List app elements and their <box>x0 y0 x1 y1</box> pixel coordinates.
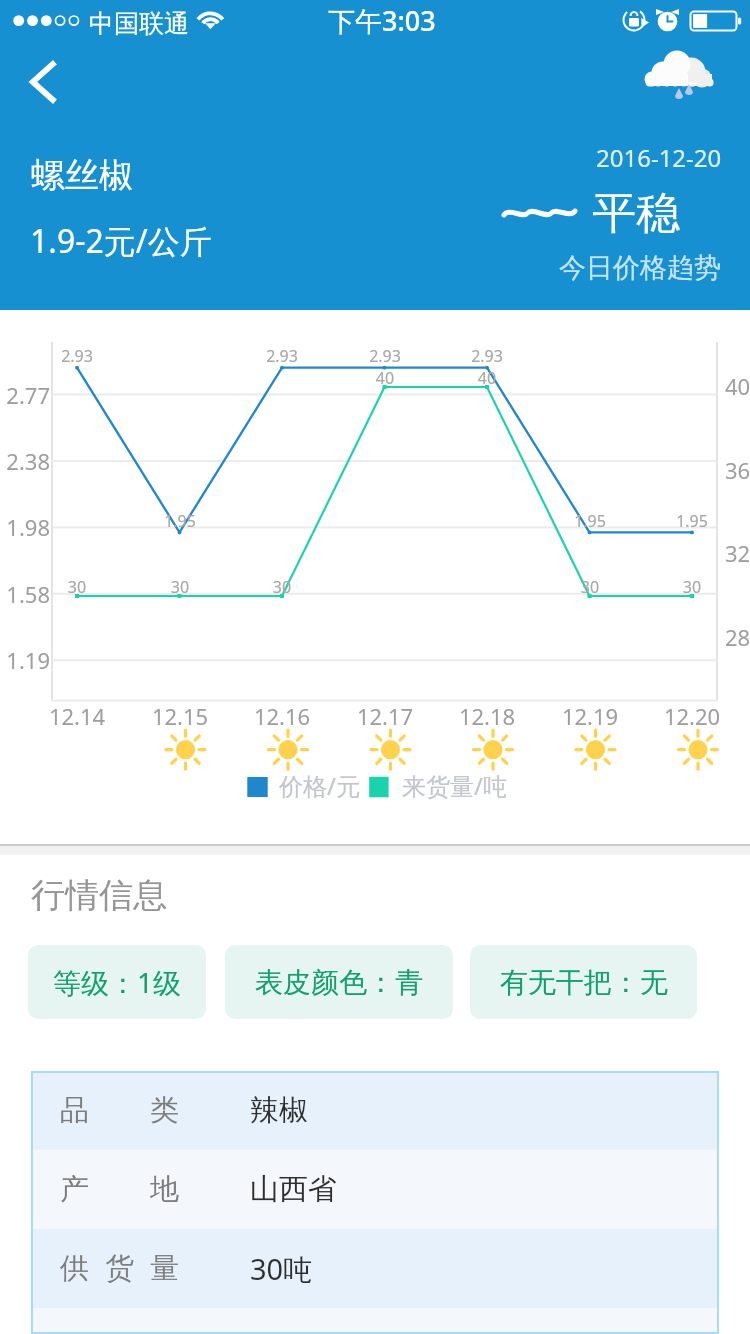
staticText: 1.19 <box>0 645 50 675</box>
staticText: 12.17 <box>345 701 425 731</box>
staticText: 下午3:03 <box>328 2 436 39</box>
staticText: 40 <box>725 371 750 401</box>
staticText: 行情信息 <box>31 874 167 917</box>
staticText: 地 <box>150 1171 179 1208</box>
staticText: 12.20 <box>652 701 732 731</box>
staticText: 36 <box>725 455 750 485</box>
staticText: 30 <box>550 576 630 598</box>
staticText: 30 <box>140 576 220 598</box>
staticText: 2.93 <box>37 345 117 367</box>
staticText: 2.93 <box>242 345 322 367</box>
staticText: 12.15 <box>140 701 220 731</box>
staticText: 12.16 <box>242 701 322 731</box>
other: Weather <box>640 45 730 107</box>
staticText: 品 <box>60 1092 89 1129</box>
staticText: 1.9-2元/公斤 <box>30 219 212 263</box>
staticText: 30 <box>242 576 322 598</box>
button[interactable]: 表皮颜色：青 <box>225 945 453 1019</box>
staticText: 来货量/吨 <box>402 769 507 802</box>
button[interactable]: Back <box>8 47 78 117</box>
staticText: 2.93 <box>345 345 425 367</box>
staticText: 有无干把：无 <box>500 965 668 1000</box>
button[interactable]: 品 <box>31 1071 719 1150</box>
button[interactable]: 有无干把：无 <box>470 945 697 1019</box>
button[interactable]: 供 <box>31 1229 719 1308</box>
staticText: 32 <box>725 538 750 568</box>
staticText: 今日价格趋势 <box>559 251 721 285</box>
staticText: 价格/元 <box>279 769 360 802</box>
button[interactable]: 等级：1级 <box>28 945 206 1019</box>
staticText: 30 <box>37 576 117 598</box>
staticText: 货 <box>105 1250 134 1287</box>
staticText: 中国联通 <box>89 8 189 39</box>
staticText: 2.77 <box>0 380 50 410</box>
staticText: 山西省 <box>250 1171 337 1208</box>
staticText: 表皮颜色：青 <box>255 965 423 1000</box>
staticText: 量 <box>150 1250 179 1287</box>
staticText: 1.95 <box>652 510 732 532</box>
staticText: 螺丝椒 <box>31 154 133 197</box>
button[interactable]: 产 <box>31 1150 719 1229</box>
staticText: 等级：1级 <box>53 963 182 1001</box>
staticText: 1.98 <box>0 512 50 542</box>
staticText: 12.19 <box>550 701 630 731</box>
staticText: 2.38 <box>0 446 50 476</box>
staticText: 40 <box>345 367 425 389</box>
staticText: 2.93 <box>447 345 527 367</box>
staticText: 12.14 <box>37 701 117 731</box>
staticText: 30 <box>652 576 732 598</box>
staticText: 40 <box>447 367 527 389</box>
staticText: 产 <box>60 1171 89 1208</box>
staticText: 平稳 <box>592 186 680 241</box>
staticText: 供 <box>60 1250 89 1287</box>
staticText: 辣椒 <box>250 1092 308 1129</box>
staticText: 12.18 <box>447 701 527 731</box>
staticText: 1.95 <box>140 510 220 532</box>
staticText: 类 <box>150 1092 179 1129</box>
staticText: 28 <box>725 622 750 652</box>
staticText: 30吨 <box>250 1249 313 1289</box>
staticText: 1.95 <box>550 510 630 532</box>
staticText: 1.58 <box>0 579 50 609</box>
staticText: 2016-12-20 <box>596 141 722 174</box>
